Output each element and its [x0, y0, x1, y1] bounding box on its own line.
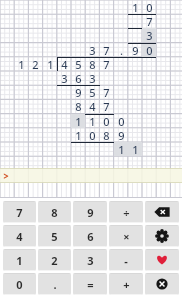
staticText: 4	[89, 99, 96, 113]
staticText: 0	[16, 277, 23, 292]
button[interactable]: Clear	[145, 273, 179, 295]
staticText: +	[123, 277, 130, 292]
staticText: 3	[61, 71, 68, 85]
button[interactable]: 0	[3, 273, 36, 295]
button[interactable]: 9	[73, 201, 107, 223]
staticText: 3	[89, 43, 96, 57]
staticText: 0	[146, 43, 153, 57]
staticText: 7	[103, 85, 110, 99]
staticText: 7	[103, 99, 110, 113]
button[interactable]: Settings	[145, 225, 179, 247]
button[interactable]: 4	[3, 225, 36, 247]
staticText: 9	[132, 43, 139, 57]
button[interactable]: 5	[38, 225, 71, 247]
staticText: 9	[75, 85, 82, 99]
button[interactable]: 2	[38, 249, 71, 271]
staticText: 9	[118, 128, 125, 142]
staticText: 5	[89, 85, 96, 99]
button[interactable]: 8	[38, 201, 71, 223]
staticText: 6	[75, 71, 82, 85]
button[interactable]: ÷	[109, 201, 143, 223]
staticText: 1	[75, 128, 82, 142]
staticText: 7	[146, 14, 153, 28]
staticText: 9	[87, 205, 94, 220]
button[interactable]: 1	[3, 249, 36, 271]
staticText: 8	[51, 205, 58, 220]
staticText: 0	[146, 0, 153, 14]
staticText: 6	[87, 229, 94, 244]
staticText: 2	[32, 57, 39, 71]
staticText: 7	[103, 57, 110, 71]
staticText: 1	[75, 114, 82, 128]
staticText: .	[53, 277, 57, 292]
staticText: >	[3, 169, 9, 183]
staticText: =	[87, 277, 94, 292]
staticText: 8	[75, 99, 82, 113]
staticText: 5	[51, 229, 58, 244]
staticText: 1	[132, 142, 139, 156]
button[interactable]: 7	[3, 201, 36, 223]
button[interactable]: -	[109, 249, 143, 271]
button[interactable]: Favorite	[145, 249, 179, 271]
button[interactable]: .	[38, 273, 71, 295]
staticText: 1	[118, 142, 125, 156]
staticText: 7	[16, 205, 23, 220]
staticText: 3	[89, 71, 96, 85]
button[interactable]: >	[0, 168, 182, 183]
staticText: 5	[75, 57, 82, 71]
staticText: 7	[103, 43, 110, 57]
staticText: .	[120, 43, 123, 57]
button[interactable]: 6	[73, 225, 107, 247]
staticText: 4	[61, 57, 68, 71]
staticText: ×	[123, 229, 130, 244]
staticText: 2	[51, 253, 58, 268]
staticText: -	[124, 253, 128, 268]
staticText: 3	[146, 28, 153, 42]
staticText: 0	[89, 128, 96, 142]
staticText: ÷	[123, 205, 130, 220]
staticText: 1	[47, 57, 54, 71]
staticText: 0	[103, 114, 110, 128]
staticText: 3	[87, 253, 94, 268]
button[interactable]: +	[109, 273, 143, 295]
staticText: 1	[89, 114, 96, 128]
staticText: 1	[18, 57, 25, 71]
button[interactable]: 3	[73, 249, 107, 271]
button[interactable]: =	[73, 273, 107, 295]
staticText: 1	[132, 0, 139, 14]
staticText: 8	[89, 57, 96, 71]
staticText: 0	[118, 114, 125, 128]
staticText: 1	[16, 253, 23, 268]
button[interactable]: ×	[109, 225, 143, 247]
staticText: 8	[103, 128, 110, 142]
button[interactable]: Backspace	[145, 201, 179, 223]
staticText: 4	[16, 229, 23, 244]
